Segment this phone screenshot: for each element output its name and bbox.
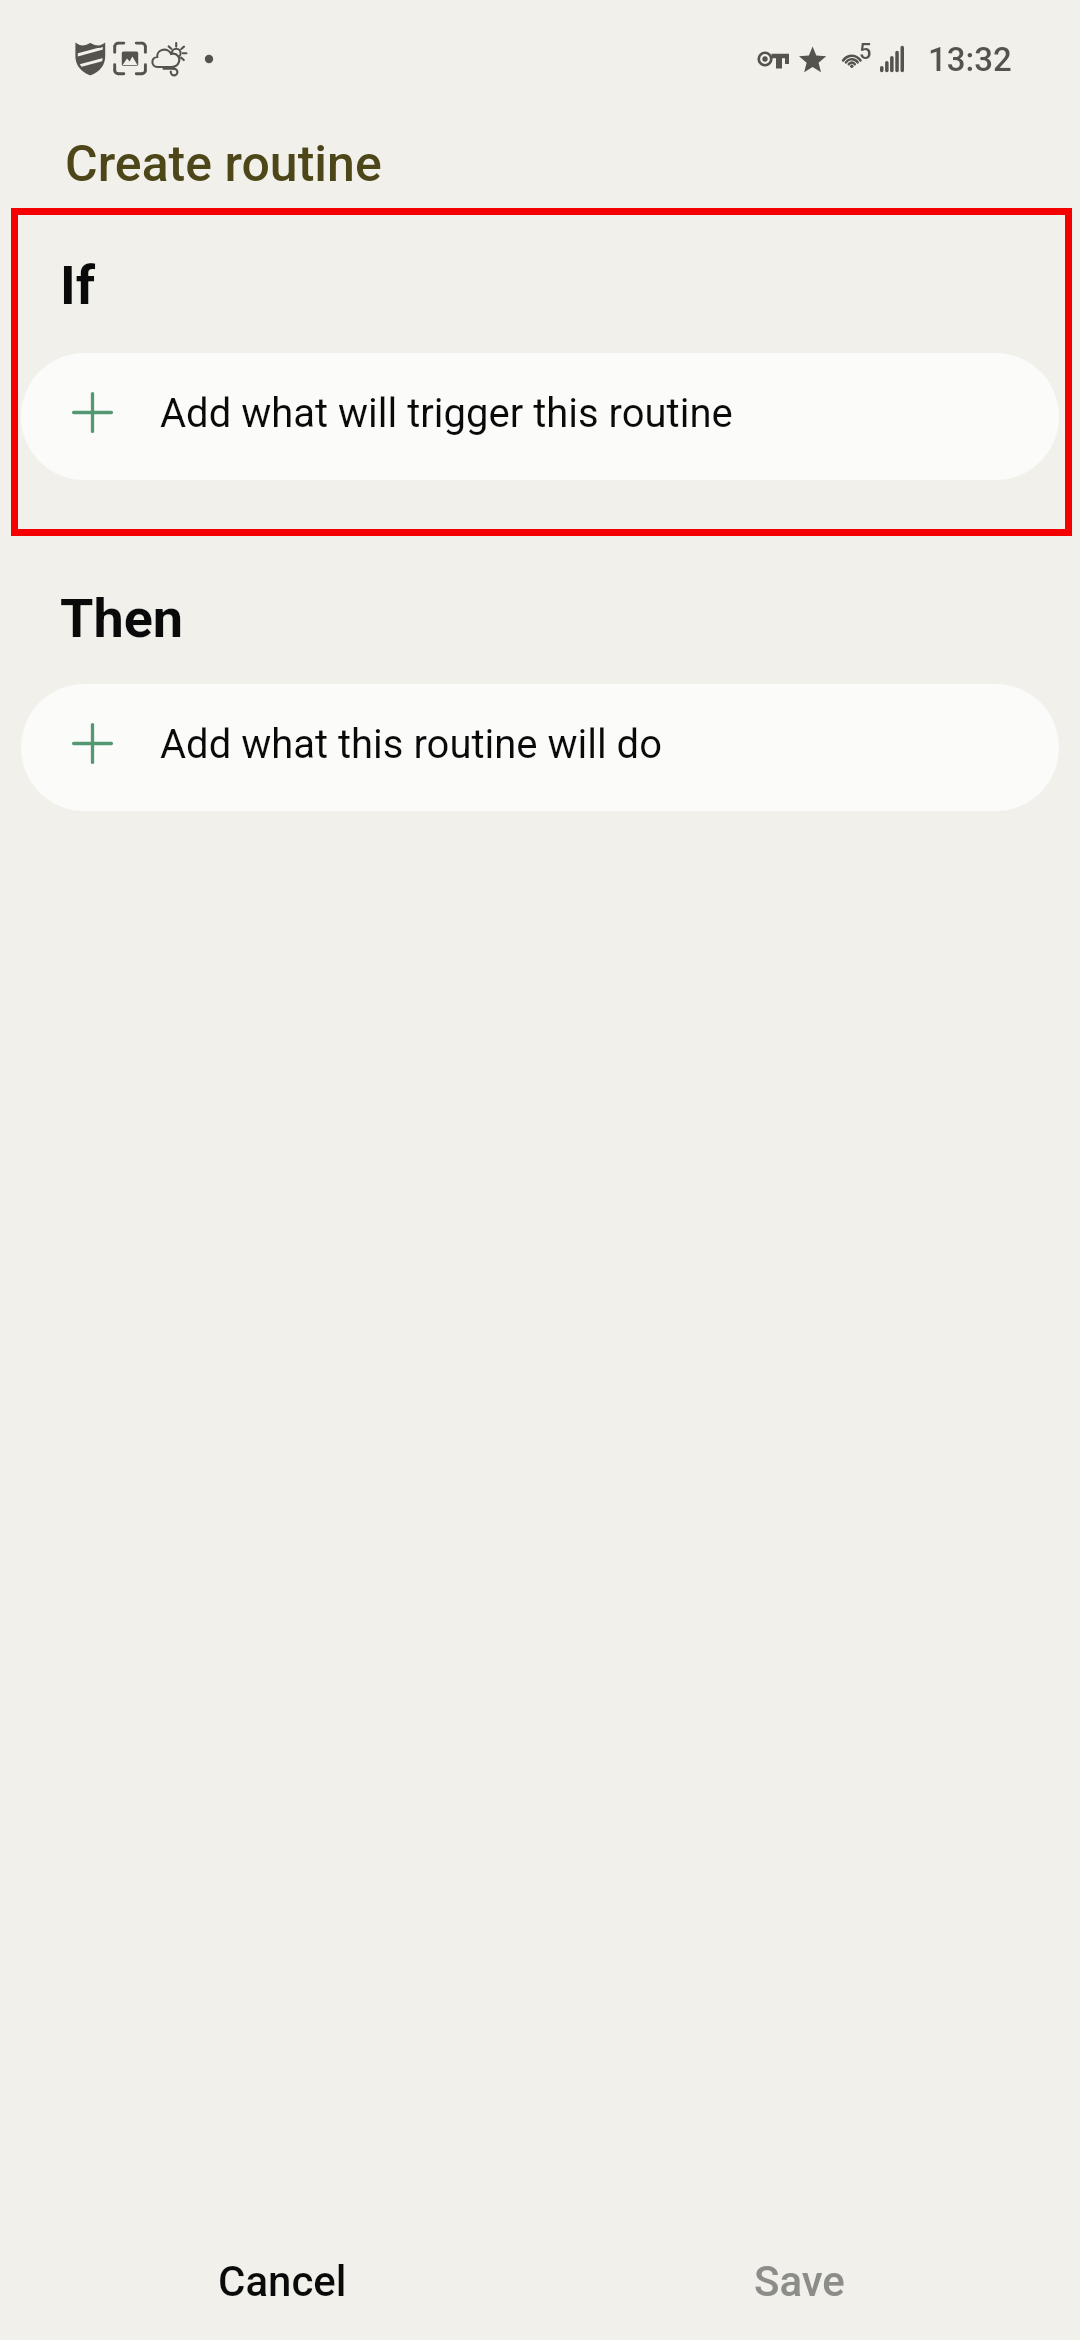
staticText: Then	[60, 587, 184, 650]
staticText: 13:32	[928, 40, 1012, 79]
staticText: 5	[859, 39, 872, 65]
staticText: Add what this routine will do	[160, 721, 662, 768]
staticText: Add what will trigger this routine	[160, 390, 733, 437]
button[interactable]: Cancel	[110, 2226, 455, 2336]
button[interactable]: Add	[21, 684, 1059, 811]
staticText: Cancel	[218, 2257, 347, 2306]
staticText: If	[60, 254, 96, 317]
other: Add	[72, 723, 113, 764]
button[interactable]: Save	[627, 2226, 972, 2336]
staticText: Save	[754, 2257, 845, 2306]
button[interactable]: Add	[21, 353, 1059, 480]
staticText: Create routine	[65, 135, 382, 194]
other: Add	[72, 392, 113, 433]
